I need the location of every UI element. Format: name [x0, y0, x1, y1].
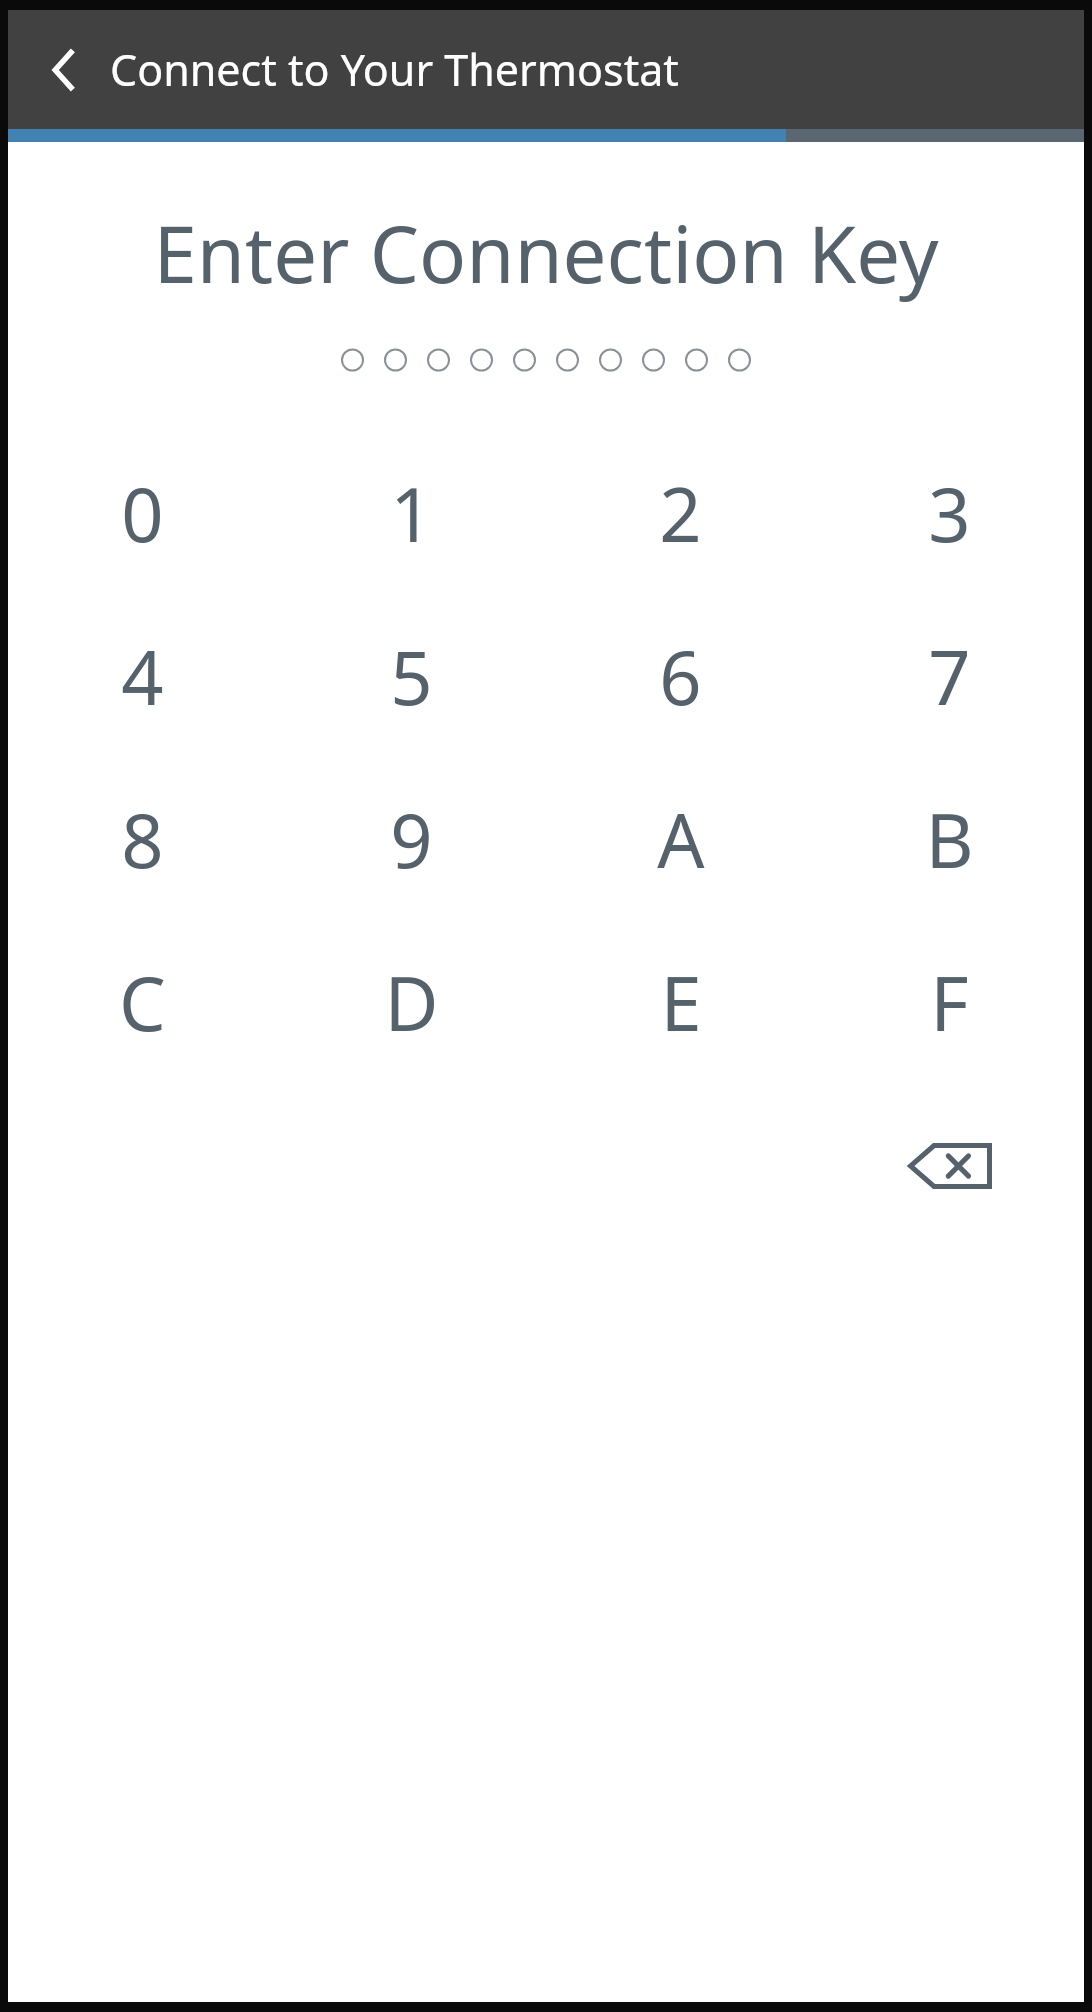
button[interactable]: 6 — [546, 595, 815, 758]
staticText: Enter Connection Key — [8, 200, 1084, 306]
button[interactable]: 2 — [546, 432, 815, 595]
staticText: Connect to Your Thermostat — [110, 40, 679, 99]
button[interactable]: E — [546, 921, 815, 1084]
button[interactable]: D — [277, 921, 546, 1084]
button[interactable]: 1 — [277, 432, 546, 595]
button[interactable]: A — [546, 758, 815, 921]
button[interactable]: 3 — [815, 432, 1084, 595]
staticText: E — [660, 952, 702, 1053]
staticText: D — [384, 952, 439, 1053]
button[interactable]: 5 — [277, 595, 546, 758]
staticText: 7 — [928, 626, 971, 727]
button[interactable]: 8 — [8, 758, 277, 921]
button[interactable]: C — [8, 921, 277, 1084]
staticText: 6 — [659, 626, 702, 727]
staticText: 4 — [121, 626, 164, 727]
staticText: 1 — [390, 463, 433, 564]
button[interactable]: 0 — [8, 432, 277, 595]
button[interactable]: Back — [24, 30, 104, 110]
button[interactable]: 7 — [815, 595, 1084, 758]
staticText: 3 — [928, 463, 971, 564]
button[interactable]: B — [815, 758, 1084, 921]
staticText: 2 — [659, 463, 702, 564]
staticText: F — [930, 952, 969, 1053]
staticText: A — [657, 789, 705, 890]
button[interactable]: F — [815, 921, 1084, 1084]
button[interactable]: 4 — [8, 595, 277, 758]
button[interactable]: Backspace — [815, 1084, 1084, 1247]
staticText: 0 — [121, 463, 164, 564]
button[interactable]: 9 — [277, 758, 546, 921]
staticText: 9 — [390, 789, 433, 890]
staticText: 5 — [390, 626, 433, 727]
staticText: B — [925, 789, 974, 890]
staticText: 8 — [121, 789, 164, 890]
staticText: C — [119, 952, 166, 1053]
